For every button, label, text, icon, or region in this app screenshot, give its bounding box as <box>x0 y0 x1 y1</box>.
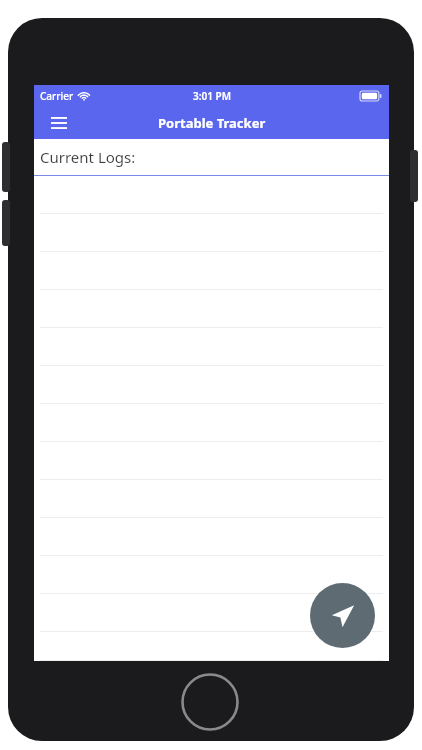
button[interactable]: Current Logs: <box>34 139 389 175</box>
staticText: 3:01 PM <box>193 89 231 103</box>
button[interactable] <box>34 632 389 661</box>
button[interactable]: Send location <box>310 583 375 648</box>
staticText: Portable Tracker <box>158 114 266 132</box>
other: Home <box>181 673 239 731</box>
button[interactable] <box>34 594 389 632</box>
button[interactable]: Menu <box>44 108 74 138</box>
staticText: Current Logs: <box>40 147 136 167</box>
staticText: Carrier <box>40 89 74 103</box>
button[interactable] <box>34 556 389 594</box>
